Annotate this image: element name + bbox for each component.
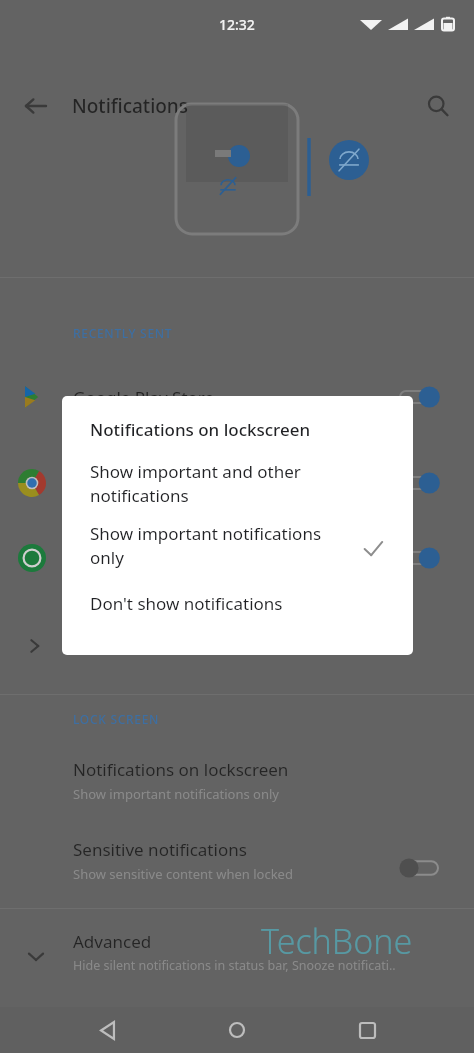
staticText: Notifications (72, 93, 189, 119)
button[interactable]: Sensitive notifications (0, 832, 474, 904)
button[interactable]: Show important notifications only (62, 518, 413, 580)
button[interactable]: Search (416, 84, 460, 128)
staticText: Don't show notifications (90, 592, 283, 615)
staticText: TechBone (261, 918, 413, 964)
staticText: Chrome (73, 472, 137, 495)
button[interactable]: WhatsApp (0, 527, 474, 589)
button[interactable]: Home (214, 1007, 260, 1053)
staticText: Show important notifications only (73, 785, 279, 803)
staticText: Notifications on lockscreen (73, 758, 289, 781)
staticText: Notifications on lockscreen (90, 418, 311, 441)
staticText: 12:32 (219, 15, 255, 34)
button[interactable]: Google Play Store (0, 366, 474, 428)
staticText: Google Play Store (73, 386, 215, 409)
staticText: Show important notifications only (90, 522, 322, 569)
button[interactable]: Back (14, 84, 58, 128)
button[interactable]: Back (84, 1007, 130, 1053)
button[interactable]: Show important and other notifications (62, 456, 413, 518)
staticText: Show sensitive content when locked (73, 865, 293, 883)
staticText: WhatsApp (73, 547, 155, 570)
staticText: LOCK SCREEN (73, 711, 160, 727)
staticText: Sensitive notifications (73, 838, 247, 861)
button[interactable] (0, 618, 474, 674)
staticText: Advanced (73, 930, 152, 953)
staticText: RECENTLY SENT (73, 325, 173, 341)
button[interactable]: Chrome (0, 452, 474, 514)
button[interactable]: Advanced (0, 918, 474, 994)
button[interactable]: Recent apps (344, 1007, 390, 1053)
button[interactable]: Don't show notifications (62, 588, 413, 638)
staticText: Show important and other notifications (90, 460, 301, 507)
staticText: Hide silent notifications in status bar,… (73, 957, 396, 974)
button[interactable]: Notifications on lockscreen (0, 752, 474, 824)
